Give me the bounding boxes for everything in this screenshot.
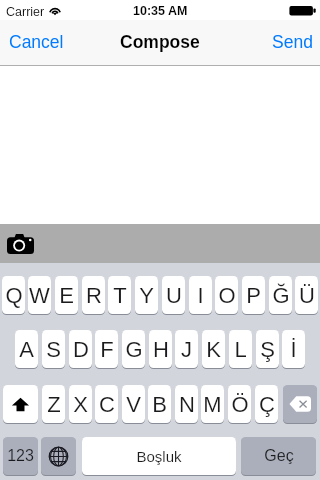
staticText: Ü [299,283,315,308]
staticText: T [113,283,127,308]
button[interactable]: K [202,330,225,368]
button[interactable]: Q [2,276,25,314]
staticText: X [73,392,88,417]
button[interactable]: E [55,276,78,314]
staticText: Y [139,283,154,308]
button[interactable]: Boşluk [82,437,236,475]
button[interactable]: Y [135,276,158,314]
staticText: J [181,337,192,362]
staticText: Ç [259,392,275,417]
button[interactable]: L [229,330,252,368]
staticText: N [179,392,195,417]
button[interactable]: X [69,385,92,423]
button[interactable]: G [122,330,145,368]
staticText: P [246,283,261,308]
button[interactable]: Ü [295,276,318,314]
button[interactable]: O [215,276,238,314]
button[interactable]: S [42,330,65,368]
staticText: Boşluk [136,448,182,465]
staticText: U [166,283,182,308]
staticText: G [125,337,143,362]
staticText: Compose [120,32,200,52]
button[interactable]: A [15,330,38,368]
button[interactable]: C [95,385,118,423]
button[interactable]: M [201,385,224,423]
button[interactable]: T [108,276,131,314]
button[interactable]: D [69,330,92,368]
button[interactable]: F [95,330,118,368]
button[interactable]: Next keyboard [41,437,76,475]
button[interactable]: J [175,330,198,368]
staticText: Z [47,392,61,417]
button[interactable]: R [82,276,105,314]
button[interactable]: Camera [3,230,37,258]
button[interactable]: I [189,276,212,314]
staticText: B [152,392,167,417]
button[interactable]: V [122,385,145,423]
staticText: V [126,392,141,417]
staticText: Cancel [9,32,64,52]
button[interactable]: İ [282,330,305,368]
button[interactable]: U [162,276,185,314]
staticText: 10:35 AM [133,4,188,18]
staticText: İ [290,337,297,362]
button[interactable]: Ö [228,385,251,423]
staticText: R [86,283,102,308]
staticText: A [19,337,34,362]
button[interactable]: Z [42,385,65,423]
staticText: D [73,337,89,362]
button[interactable]: B [148,385,171,423]
button[interactable]: Ç [255,385,278,423]
staticText: Ğ [272,283,290,308]
button[interactable]: P [242,276,265,314]
button[interactable]: Send [272,20,313,64]
staticText: C [99,392,115,417]
button[interactable]: Geç [241,437,316,475]
staticText: H [153,337,169,362]
staticText: E [59,283,74,308]
staticText: Send [272,32,313,52]
button[interactable]: Ğ [269,276,292,314]
button[interactable]: 123 [3,437,38,475]
staticText: O [218,283,236,308]
button[interactable]: N [175,385,198,423]
staticText: S [46,337,61,362]
staticText: 123 [7,447,34,465]
staticText: I [197,283,204,308]
button[interactable]: Cancel [9,20,64,64]
staticText: W [29,283,50,308]
staticText: Geç [264,447,294,465]
staticText: M [203,392,222,417]
button[interactable]: W [28,276,51,314]
staticText: Ş [260,337,275,362]
staticText: F [100,337,114,362]
staticText: Carrier [6,5,45,19]
button[interactable]: Backspace [283,385,317,423]
button[interactable]: H [149,330,172,368]
button[interactable]: Shift [3,385,38,423]
staticText: K [206,337,221,362]
staticText: L [234,337,247,362]
staticText: Ö [231,392,249,417]
staticText: Q [5,283,23,308]
button[interactable]: Ş [256,330,279,368]
